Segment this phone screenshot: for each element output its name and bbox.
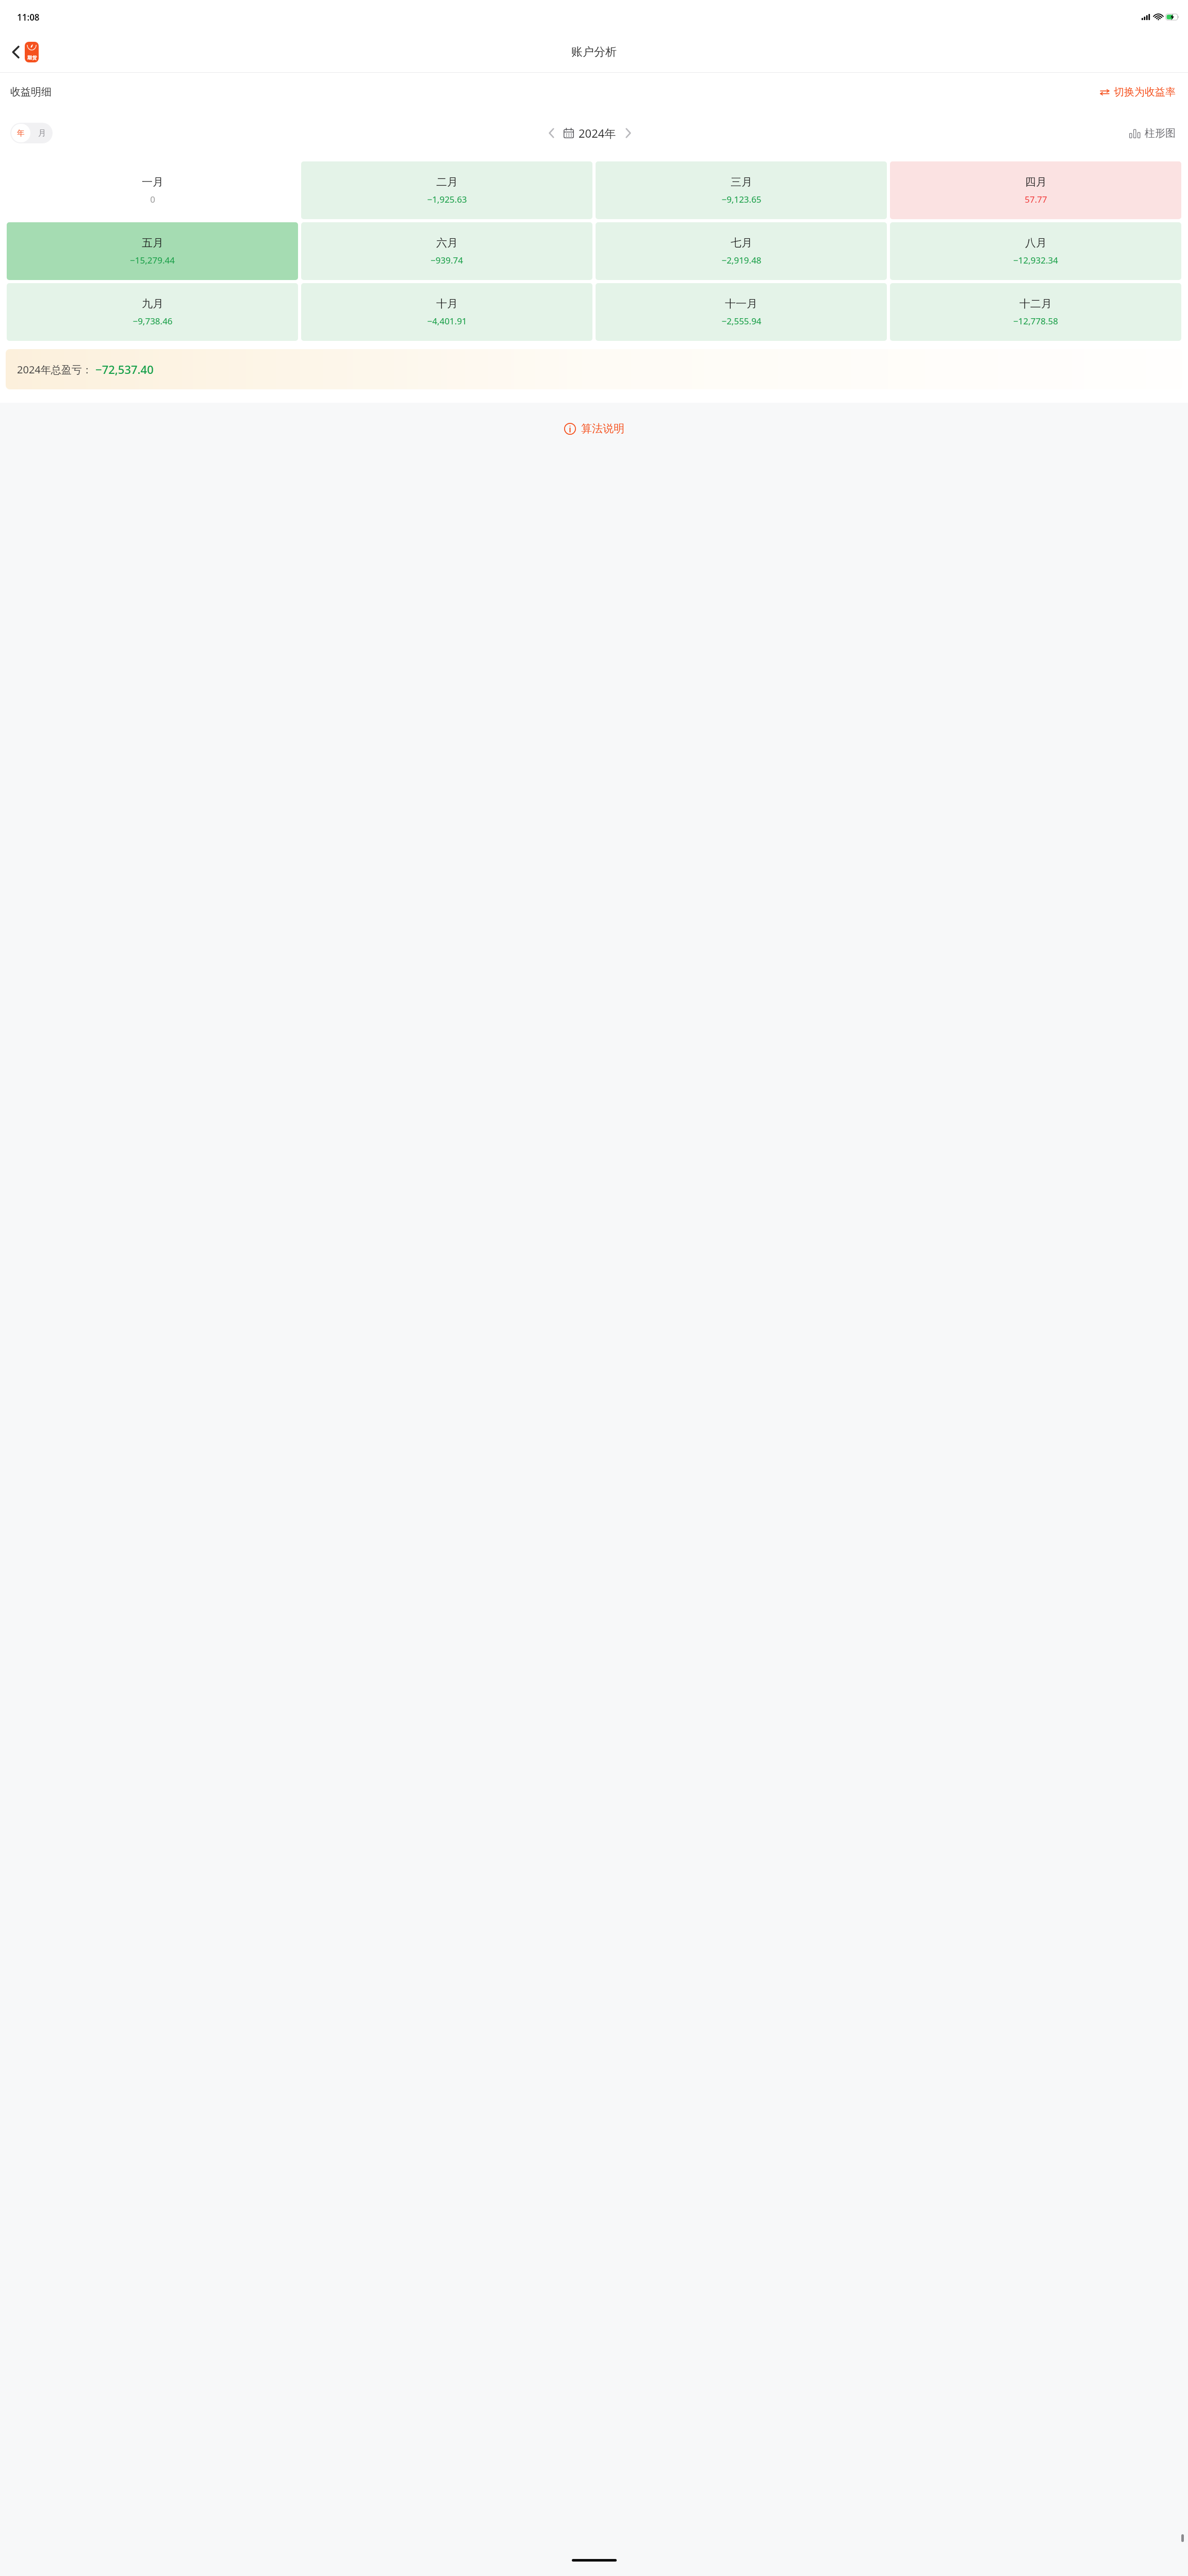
staticText: −4,401.91	[427, 315, 467, 327]
staticText: 五月	[142, 236, 163, 250]
staticText: 一月	[142, 175, 163, 189]
staticText: 月	[38, 128, 46, 138]
staticText: 11:08	[17, 11, 40, 23]
staticText: 0	[150, 193, 155, 205]
button[interactable]: 下一年	[621, 124, 635, 142]
button[interactable]: 切换为收益率	[1098, 83, 1178, 102]
button[interactable]: 三月	[596, 161, 887, 219]
button[interactable]: 二月	[301, 161, 592, 219]
staticText: 账户分析	[571, 45, 617, 59]
staticText: 57.77	[1025, 193, 1047, 205]
staticText: 十月	[436, 297, 458, 310]
staticText: −2,555.94	[721, 315, 762, 327]
staticText: −9,123.65	[721, 193, 762, 205]
staticText: 2024年	[579, 125, 616, 141]
button[interactable]: 九月	[7, 283, 298, 341]
staticText: 二月	[436, 175, 458, 189]
button[interactable]: 2024年总盈亏：	[6, 349, 1182, 389]
button[interactable]: 十月	[301, 283, 592, 341]
staticText: −12,778.58	[1013, 315, 1058, 327]
staticText: 九月	[142, 297, 163, 310]
staticText: 十一月	[725, 297, 757, 310]
staticText: 收益明细	[10, 86, 52, 99]
button[interactable]: 七月	[596, 222, 887, 280]
button[interactable]: 月	[31, 123, 53, 143]
button[interactable]: 十二月	[890, 283, 1181, 341]
staticText: 六月	[436, 236, 458, 250]
button[interactable]: 十一月	[596, 283, 887, 341]
button[interactable]: 八月	[890, 222, 1181, 280]
button[interactable]: 五月	[7, 222, 298, 280]
button[interactable]: 年	[11, 124, 30, 142]
button[interactable]: 一月	[7, 161, 298, 219]
staticText: 八月	[1025, 236, 1047, 250]
staticText: 三月	[731, 175, 752, 189]
button[interactable]: 柱形图	[1127, 124, 1178, 143]
button[interactable]: 返回	[9, 39, 42, 65]
staticText: −12,932.34	[1013, 254, 1058, 266]
staticText: −9,738.46	[133, 315, 173, 327]
button[interactable]: 上一年	[544, 124, 558, 142]
staticText: −2,919.48	[721, 254, 762, 266]
staticText: 算法说明	[581, 422, 624, 435]
staticText: −72,537.40	[95, 362, 154, 377]
staticText: 七月	[731, 236, 752, 250]
staticText: 2024年总盈亏：	[17, 363, 92, 376]
button[interactable]: 四月	[890, 161, 1181, 219]
staticText: −15,279.44	[130, 254, 175, 266]
button[interactable]: 算法说明	[554, 416, 635, 441]
staticText: 切换为收益率	[1114, 86, 1176, 99]
button[interactable]: 六月	[301, 222, 592, 280]
staticText: 十二月	[1019, 297, 1052, 310]
staticText: 柱形图	[1145, 127, 1176, 140]
staticText: 四月	[1025, 175, 1047, 189]
staticText: 年	[17, 128, 25, 138]
staticText: −1,925.63	[427, 193, 467, 205]
staticText: −939.74	[431, 254, 463, 266]
staticText: 期货	[27, 55, 37, 60]
